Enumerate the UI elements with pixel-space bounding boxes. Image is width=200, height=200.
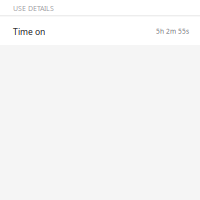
button[interactable]: Time on: [0, 16, 200, 45]
staticText: Time on: [13, 26, 45, 37]
staticText: USE DETAILS: [13, 3, 54, 13]
staticText: 5h 2m 55s: [156, 27, 189, 36]
